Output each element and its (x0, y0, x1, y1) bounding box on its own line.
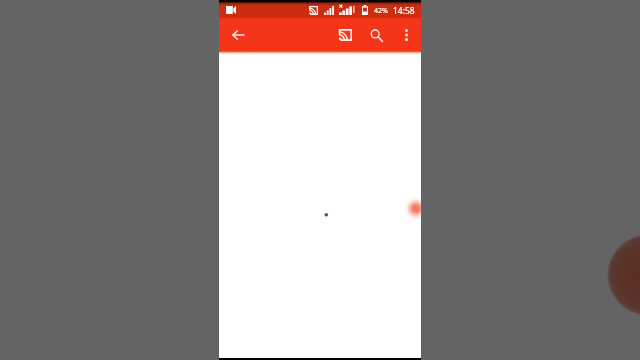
button[interactable]: Cast to device (332, 20, 357, 50)
staticText: 14:58 (393, 5, 415, 17)
button[interactable]: Back (227, 24, 249, 46)
button[interactable]: More options (394, 20, 418, 50)
staticText: 42% (374, 6, 388, 16)
button[interactable]: Search (363, 20, 389, 50)
